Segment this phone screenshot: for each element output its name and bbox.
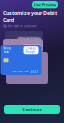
staticText: Choose Color [19,37,39,41]
staticText: Live Preview [34,2,56,7]
staticText: Tap the card to customize [3,24,37,28]
staticText: Customize your Debit Card [3,9,57,23]
staticText: Add Sticker [24,45,39,49]
staticText: Continue [22,107,41,112]
staticText: Change Design [25,47,36,54]
button[interactable]: Continue [4,105,60,114]
staticText: •••• •••• •••• 4829 [12,70,38,74]
staticText: Write Text [3,47,11,54]
button[interactable]: Live Preview [32,1,58,8]
